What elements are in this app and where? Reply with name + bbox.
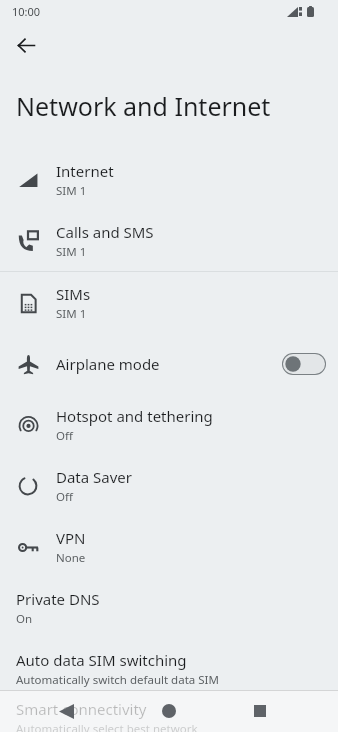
button[interactable]: Private DNS bbox=[0, 577, 338, 638]
button[interactable]: Auto data SIM switching bbox=[0, 638, 338, 699]
button[interactable]: Back bbox=[48, 693, 84, 729]
button[interactable]: Back bbox=[10, 29, 42, 61]
button[interactable]: VPN bbox=[0, 516, 338, 577]
button[interactable]: Calls and SMS bbox=[0, 210, 338, 271]
button[interactable]: Recents bbox=[242, 693, 278, 729]
staticText: VPN bbox=[56, 528, 86, 548]
button[interactable]: Airplane mode toggle bbox=[282, 353, 326, 375]
staticText: Airplane mode bbox=[56, 354, 160, 374]
staticText: Hotspot and tethering bbox=[56, 406, 213, 426]
staticText: Off bbox=[56, 428, 73, 444]
staticText: Auto data SIM switching bbox=[16, 650, 187, 670]
staticText: Automatically select best network bbox=[16, 721, 198, 732]
staticText: SIM 1 bbox=[56, 244, 87, 260]
button[interactable]: Smart connectivity bbox=[0, 699, 338, 732]
staticText: 10:00 bbox=[12, 4, 41, 19]
staticText: Off bbox=[56, 489, 73, 505]
staticText: Network and Internet bbox=[16, 89, 271, 123]
button[interactable]: SIMs bbox=[0, 272, 338, 333]
button[interactable]: Hotspot and tethering bbox=[0, 394, 338, 455]
staticText: Smart connectivity bbox=[16, 699, 147, 719]
staticText: SIM 1 bbox=[56, 183, 87, 199]
staticText: SIM 1 bbox=[56, 306, 87, 322]
button[interactable]: Internet bbox=[0, 149, 338, 210]
staticText: Data Saver bbox=[56, 467, 133, 487]
button[interactable]: Home bbox=[151, 693, 187, 729]
button[interactable]: Airplane mode bbox=[0, 333, 338, 394]
staticText: Calls and SMS bbox=[56, 222, 154, 242]
staticText: SIMs bbox=[56, 284, 91, 304]
button[interactable]: Data Saver bbox=[0, 455, 338, 516]
staticText: Private DNS bbox=[16, 589, 100, 609]
staticText: None bbox=[56, 550, 86, 566]
staticText: Internet bbox=[56, 161, 114, 181]
staticText: Automatically switch default data SIM bbox=[16, 672, 219, 688]
staticText: On bbox=[16, 611, 33, 627]
